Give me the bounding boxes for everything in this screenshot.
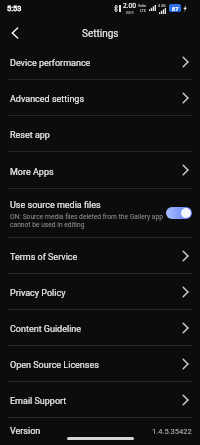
staticText: LTE: [140, 8, 146, 13]
button[interactable]: Back: [2, 21, 26, 45]
staticText: ON: Source media files deleted from the …: [10, 213, 164, 221]
button[interactable]: Privacy Policy: [0, 274, 200, 309]
staticText: KB/S: [126, 10, 134, 15]
staticText: Version: [10, 426, 41, 437]
button[interactable]: Use source media files toggle: [166, 207, 192, 219]
staticText: 2.00: [123, 1, 136, 10]
button[interactable]: Advanced settings: [0, 80, 200, 115]
button[interactable]: Email Support: [0, 382, 200, 417]
staticText: 5:53: [7, 4, 22, 13]
staticText: 1.4.5.35422: [152, 427, 192, 436]
staticText: Email Support: [10, 396, 67, 407]
button[interactable]: Reset app: [0, 116, 200, 151]
staticText: Terms of Service: [10, 252, 78, 263]
staticText: More Apps: [10, 167, 54, 178]
button[interactable]: More Apps: [0, 152, 200, 188]
button[interactable]: Content Guideline: [0, 310, 200, 345]
button[interactable]: Open Source Licenses: [0, 346, 200, 381]
button[interactable]: Terms of Service: [0, 238, 200, 273]
staticText: 4 4G: [158, 3, 166, 8]
staticText: Privacy Policy: [10, 288, 66, 299]
staticText: Open Source Licenses: [10, 360, 99, 371]
staticText: 67: [172, 5, 179, 12]
staticText: Settings: [82, 28, 119, 40]
staticText: Advanced settings: [10, 94, 85, 105]
staticText: Reset app: [10, 130, 50, 141]
button[interactable]: Use source media files: [0, 189, 200, 237]
staticText: Device performance: [10, 58, 91, 69]
staticText: Content Guideline: [10, 324, 82, 335]
staticText: Volte: [138, 3, 147, 8]
button[interactable]: Device performance: [0, 44, 200, 79]
staticText: Use source media files: [10, 200, 101, 211]
staticText: cannot be used in editing: [10, 221, 85, 229]
